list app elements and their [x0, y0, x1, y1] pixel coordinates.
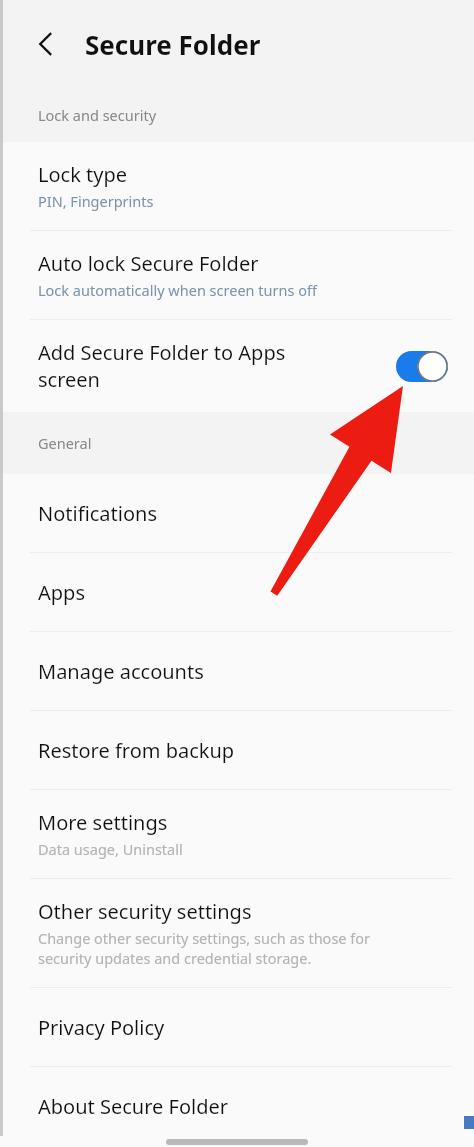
- button[interactable]: Add Secure Folder to Apps screen: [396, 351, 448, 382]
- staticText: security updates and credential storage.: [38, 948, 312, 968]
- button[interactable]: Manage accounts: [0, 632, 474, 710]
- staticText: Notifications: [38, 500, 157, 527]
- staticText: Auto lock Secure Folder: [38, 250, 259, 277]
- staticText: Restore from backup: [38, 737, 235, 764]
- staticText: Change other security settings, such as …: [38, 928, 371, 948]
- staticText: Lock and security: [38, 105, 157, 125]
- button[interactable]: Privacy Policy: [0, 988, 474, 1066]
- staticText: PIN, Fingerprints: [38, 191, 154, 211]
- button[interactable]: Notifications: [0, 474, 474, 552]
- button[interactable]: Restore from backup: [0, 711, 474, 789]
- staticText: Apps: [38, 579, 85, 606]
- staticText: Lock type: [38, 161, 128, 188]
- button[interactable]: Other security settings: [0, 879, 474, 987]
- staticText: Secure Folder: [85, 27, 261, 62]
- staticText: General: [38, 433, 92, 453]
- staticText: About Secure Folder: [38, 1093, 228, 1120]
- staticText: Privacy Policy: [38, 1014, 165, 1041]
- button[interactable]: Add Secure Folder to Apps screen: [0, 320, 474, 412]
- staticText: Data usage, Uninstall: [38, 839, 183, 859]
- staticText: Other security settings: [38, 898, 252, 925]
- staticText: Add Secure Folder to Apps screen: [38, 339, 338, 393]
- staticText: Manage accounts: [38, 658, 204, 685]
- button[interactable]: Apps: [0, 553, 474, 631]
- button[interactable]: Auto lock Secure Folder: [0, 231, 474, 319]
- staticText: Lock automatically when screen turns off: [38, 280, 317, 300]
- button[interactable]: More settings: [0, 790, 474, 878]
- button[interactable]: About Secure Folder: [0, 1067, 474, 1145]
- button[interactable]: Back: [22, 20, 70, 68]
- button[interactable]: Lock type: [0, 142, 474, 230]
- staticText: More settings: [38, 809, 168, 836]
